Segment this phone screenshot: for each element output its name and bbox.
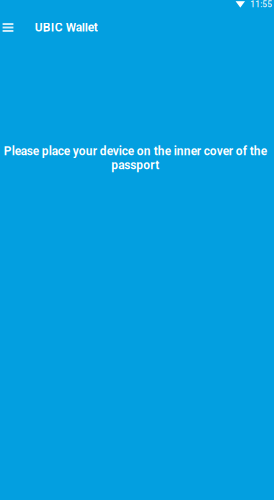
- staticText: Please place your device on the inner co…: [3, 144, 266, 172]
- button[interactable]: Open navigation menu: [0, 11, 17, 46]
- button[interactable]: UBIC Wallet: [17, 9, 108, 48]
- staticText: UBIC Wallet: [35, 20, 98, 35]
- staticText: 11:55: [250, 0, 272, 9]
